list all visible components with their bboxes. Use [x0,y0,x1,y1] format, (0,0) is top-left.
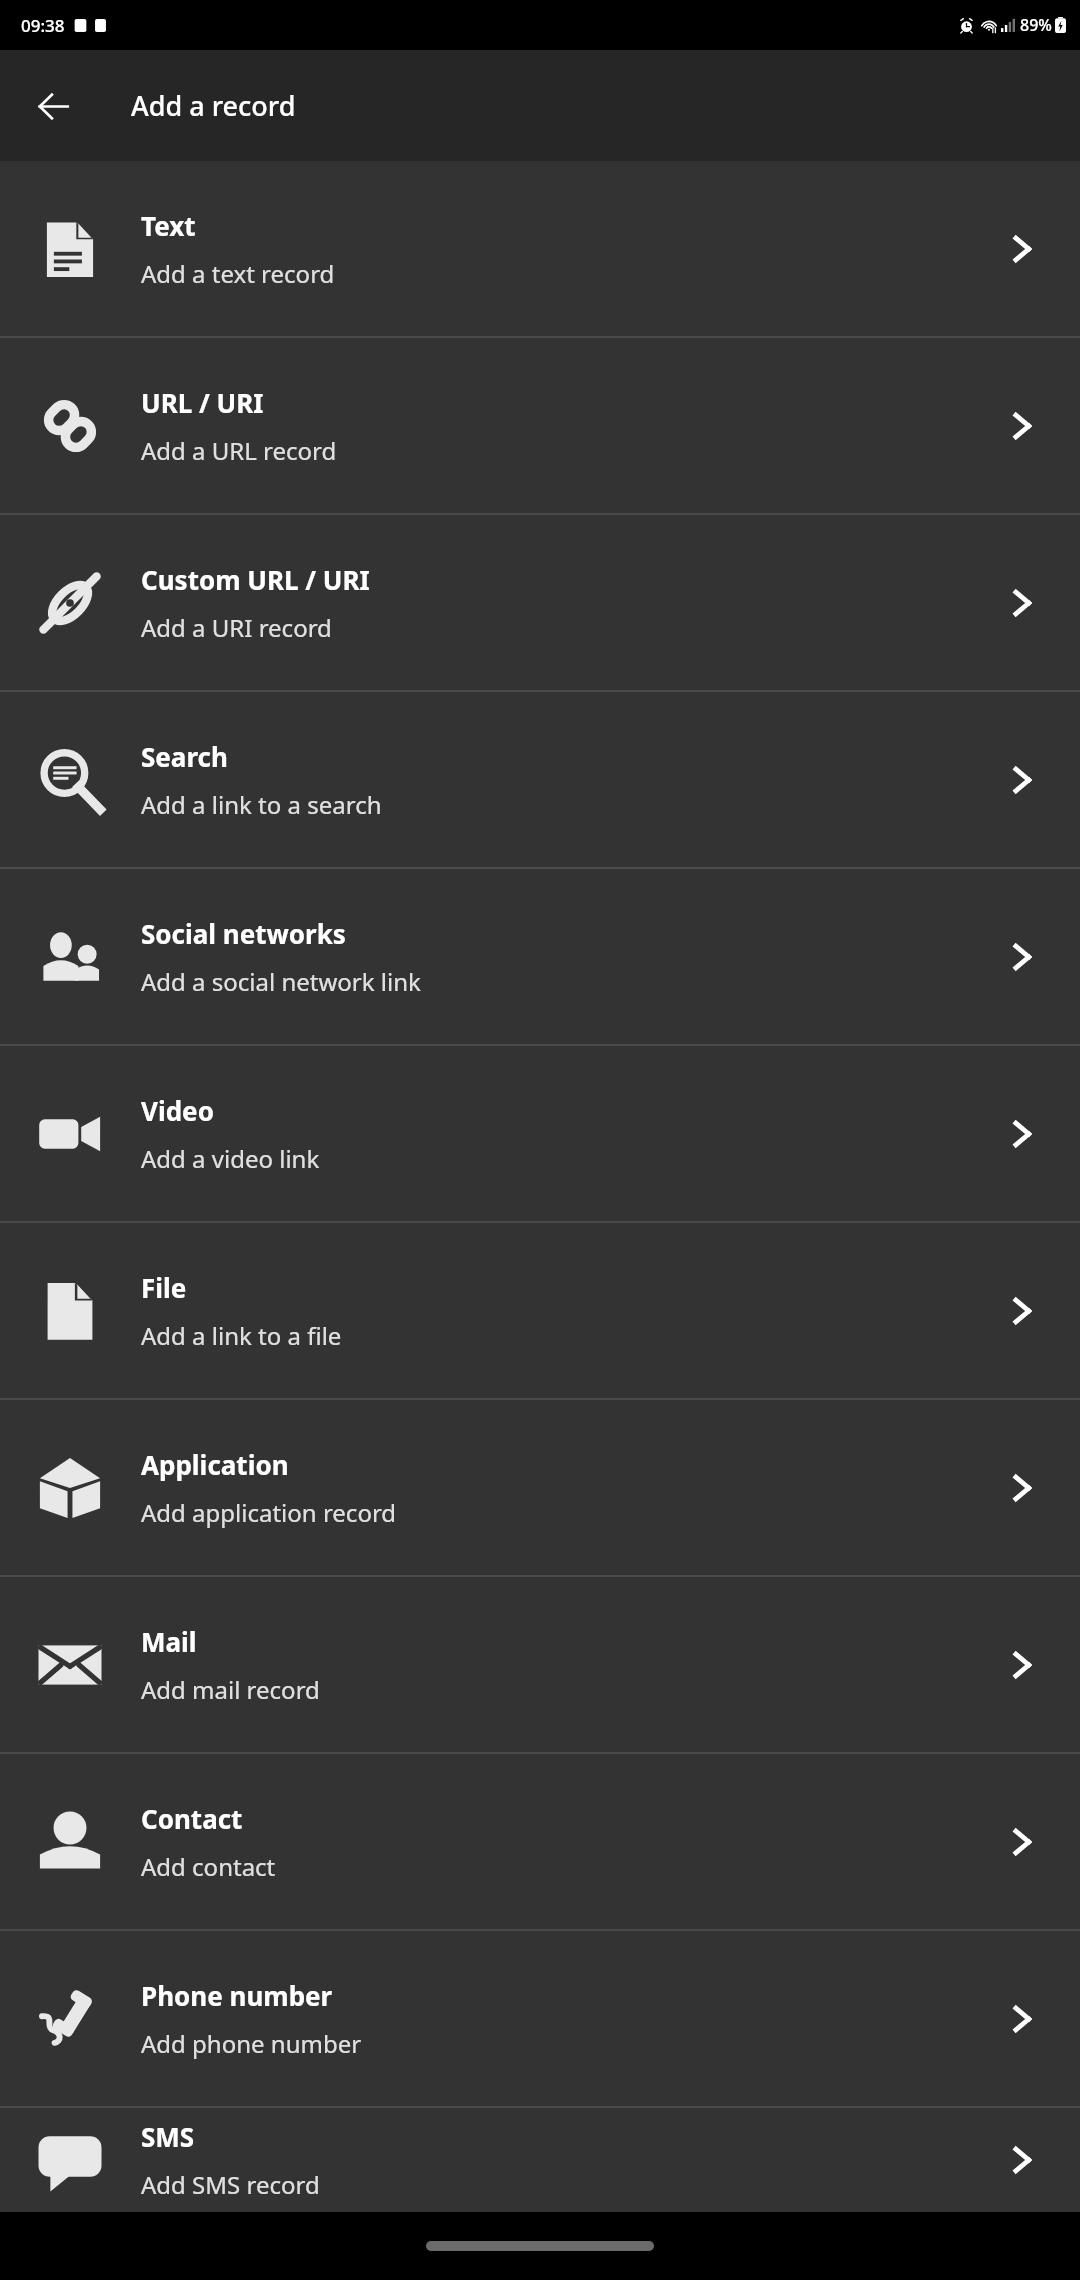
button[interactable]: Contact [0,1754,1080,1929]
button[interactable]: Text [0,161,1080,336]
button[interactable]: Custom URL / URI [0,515,1080,690]
button[interactable]: Back [22,75,84,137]
staticText: Add a video link [141,1142,320,1175]
staticText: Add contact [141,1850,276,1883]
button[interactable]: Video [0,1046,1080,1221]
staticText: Mail [141,1624,197,1659]
staticText: Add a social network link [141,965,421,998]
button[interactable]: Social networks [0,869,1080,1044]
staticText: Social networks [141,916,346,951]
staticText: URL / URI [141,385,264,420]
staticText: 09:38 [21,14,65,37]
staticText: Custom URL / URI [141,562,370,597]
staticText: Add a record [131,87,296,124]
staticText: Phone number [141,1978,333,2013]
staticText: Text [141,208,196,243]
staticText: Add a URI record [141,611,332,644]
staticText: File [141,1270,187,1305]
staticText: Add application record [141,1496,397,1529]
button[interactable]: URL / URI [0,338,1080,513]
staticText: Add phone number [141,2027,362,2060]
button[interactable]: Search [0,692,1080,867]
staticText: Contact [141,1801,243,1836]
button[interactable]: Phone number [0,1931,1080,2106]
button[interactable]: Application [0,1400,1080,1575]
staticText: Add a link to a file [141,1319,342,1352]
button[interactable]: File [0,1223,1080,1398]
staticText: Add SMS record [141,2168,320,2201]
staticText: Video [141,1093,214,1128]
staticText: 89% [1020,14,1052,36]
button[interactable]: Mail [0,1577,1080,1752]
staticText: Add mail record [141,1673,320,1706]
staticText: Add a text record [141,257,335,290]
staticText: Add a link to a search [141,788,382,821]
staticText: SMS [141,2119,195,2154]
button[interactable]: SMS [0,2108,1080,2212]
staticText: Add a URL record [141,434,337,467]
staticText: Application [141,1447,289,1482]
staticText: Search [141,739,228,774]
